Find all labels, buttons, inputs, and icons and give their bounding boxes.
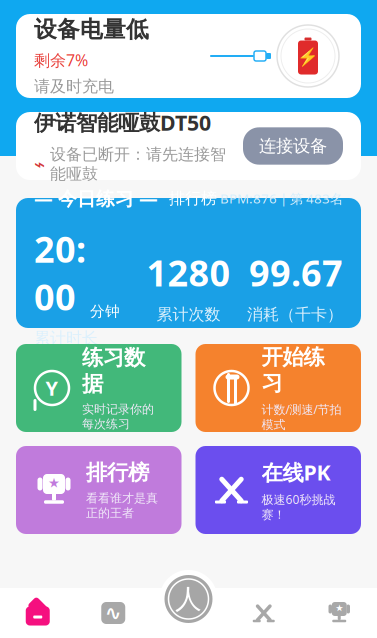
staticText: 分钟 <box>90 302 120 320</box>
staticText: 累计次数 <box>156 304 220 324</box>
staticText: ★ <box>48 475 60 490</box>
button[interactable]: 连接设备 <box>243 127 343 165</box>
staticText: — 今日练习 — <box>34 186 158 211</box>
staticText: 实时记录你的每次练习 <box>82 402 154 431</box>
staticText: 排行榜 <box>86 460 149 486</box>
staticText: ⚡ <box>297 48 319 67</box>
staticText: 排行榜 <box>169 188 217 208</box>
staticText: 20:00 <box>34 225 86 320</box>
staticText: BPM:876 | 第 483名 <box>217 189 343 207</box>
staticText: 连接设备 <box>259 135 327 157</box>
button[interactable]: 在线PK <box>195 446 361 534</box>
button[interactable]: 开始练习 <box>195 344 361 432</box>
button[interactable]: Rank <box>301 588 377 638</box>
button[interactable]: ★ <box>16 446 181 534</box>
staticText: 练习数据 <box>82 345 145 397</box>
staticText: 累计时长 <box>34 328 98 348</box>
staticText: 开始练习 <box>261 344 324 396</box>
staticText: 消耗（千卡） <box>247 304 343 324</box>
staticText: ★ <box>335 603 343 613</box>
staticText: 人 <box>175 583 202 615</box>
staticText: ⌁ <box>34 154 45 175</box>
button[interactable]: Y <box>16 344 181 432</box>
staticText: 99.67 <box>249 249 343 296</box>
staticText: ∿ <box>105 602 122 624</box>
staticText: 设备电量低 <box>34 16 149 43</box>
staticText: 极速60秒挑战赛！ <box>261 491 335 522</box>
staticText: 剩余7% <box>34 49 88 71</box>
staticText: 看看谁才是真正的王者 <box>86 491 158 520</box>
staticText: 请及时充电 <box>34 77 114 96</box>
button[interactable]: Start <box>159 570 217 628</box>
staticText: 在线PK <box>261 458 330 486</box>
button[interactable]: PK <box>226 588 301 638</box>
button[interactable]: Home <box>0 588 75 638</box>
staticText: 计数/测速/节拍模式 <box>261 401 341 432</box>
staticText: Y <box>45 375 58 401</box>
staticText: 1280 <box>146 249 230 296</box>
staticText: 设备已断开：请先连接智能哑鼓 <box>50 144 226 184</box>
staticText: 伊诺智能哑鼓DT50 <box>34 108 211 136</box>
button[interactable]: Data <box>75 588 151 638</box>
